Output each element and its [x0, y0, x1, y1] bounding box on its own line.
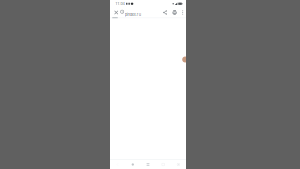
- staticText: pindex.ru: [125, 12, 141, 17]
- button[interactable]: Close: [112, 7, 120, 17]
- button[interactable]: Bookmarks: [140, 160, 156, 169]
- button[interactable]: Site security: [170, 7, 179, 17]
- button[interactable]: More options: [179, 7, 186, 17]
- button[interactable]: Share: [160, 7, 170, 17]
- staticText: 11:04: [116, 1, 125, 6]
- button[interactable]: Forward: [125, 160, 140, 169]
